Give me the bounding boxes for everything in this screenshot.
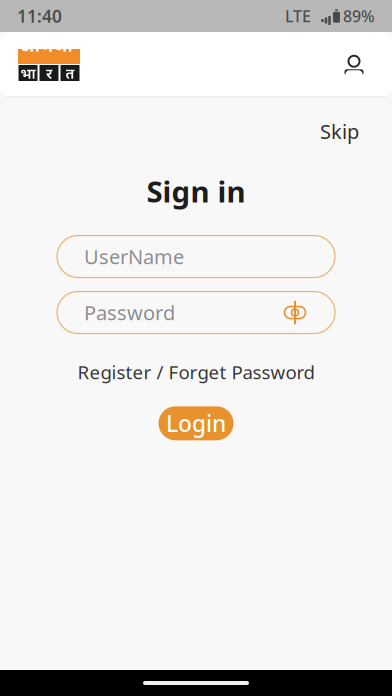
staticText: Login — [166, 408, 226, 438]
staticText: Sign in — [146, 172, 245, 211]
button[interactable]: Register / Forget Password — [71, 355, 320, 388]
staticText: र — [46, 63, 52, 83]
staticText: 11:40 — [17, 4, 62, 27]
staticText: अभिजीत — [19, 33, 78, 79]
button[interactable]: Login — [158, 406, 233, 440]
staticText: LTE — [285, 5, 311, 27]
staticText: त — [65, 63, 74, 83]
staticText: 89% — [343, 5, 375, 27]
staticText: Password — [84, 299, 175, 326]
button[interactable]: Account — [334, 45, 374, 85]
staticText: Skip — [320, 118, 359, 145]
staticText: Register / Forget Password — [77, 359, 314, 384]
staticText: UserName — [84, 243, 184, 270]
button[interactable]: Skip — [314, 114, 365, 149]
button[interactable]: Show password — [282, 301, 308, 323]
staticText: भा — [20, 63, 35, 83]
